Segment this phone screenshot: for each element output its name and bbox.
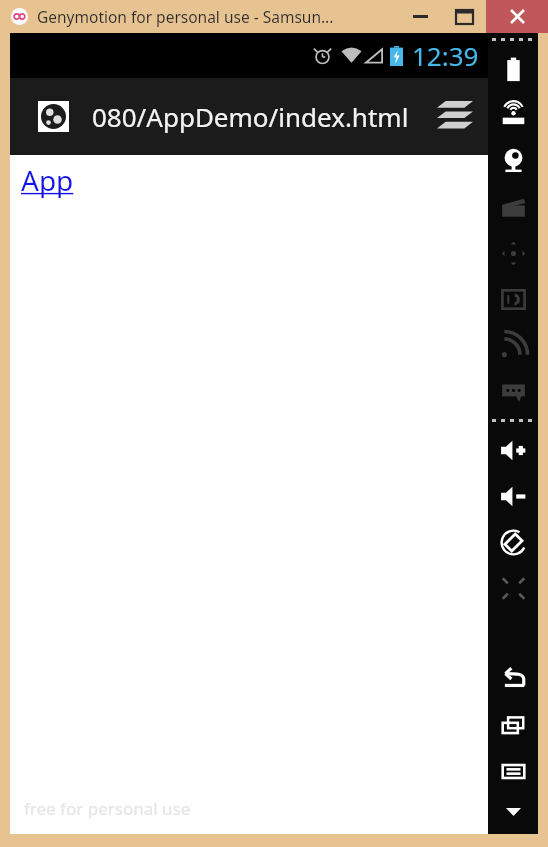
- button[interactable]: Identifiers: [488, 276, 538, 322]
- button[interactable]: Minimize: [398, 0, 442, 33]
- staticText: 080/AppDemo/index.html: [92, 99, 409, 134]
- button[interactable]: Close: [486, 0, 548, 33]
- button[interactable]: Battery: [488, 46, 538, 92]
- button[interactable]: Video: [488, 184, 538, 230]
- button[interactable]: Tabs: [422, 78, 488, 155]
- button[interactable]: Volume down: [488, 473, 538, 519]
- staticText: Genymotion for personal use - Samsun...: [37, 6, 334, 27]
- staticText: App: [21, 161, 74, 199]
- button[interactable]: Volume up: [488, 427, 538, 473]
- button[interactable]: GPS: [488, 92, 538, 138]
- button[interactable]: Rotate: [488, 519, 538, 565]
- button[interactable]: Camera: [488, 138, 538, 184]
- button[interactable]: More options: [488, 794, 538, 830]
- button[interactable]: Recent apps: [488, 702, 538, 748]
- button[interactable]: Network: [488, 322, 538, 368]
- button[interactable]: Back: [488, 656, 538, 702]
- button[interactable]: Move: [488, 230, 538, 276]
- button[interactable]: App: [21, 161, 74, 199]
- staticText: 12:39: [412, 38, 479, 73]
- staticText: free for personal use: [24, 797, 191, 820]
- button[interactable]: Maximize: [442, 0, 486, 33]
- button[interactable]: Scale one to one: [488, 565, 538, 611]
- button[interactable]: Messages: [488, 368, 538, 414]
- button[interactable]: Site information: [41, 104, 66, 129]
- button[interactable]: 080/AppDemo/index.html: [92, 78, 422, 155]
- button[interactable]: Menu: [488, 748, 538, 794]
